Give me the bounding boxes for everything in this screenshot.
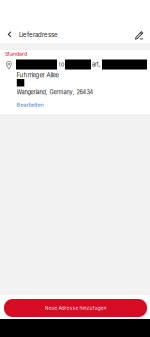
button[interactable]: Neue Adresse hinzufügen xyxy=(4,299,147,317)
staticText: To xyxy=(58,61,64,68)
staticText: Standard xyxy=(5,51,27,57)
button[interactable]: Bearbeiten xyxy=(16,100,45,109)
staticText: Lieferadresse xyxy=(19,31,58,38)
staticText: Fuhrrieger Allee xyxy=(17,71,59,79)
staticText: Neue Adresse hinzufügen xyxy=(44,305,106,311)
staticText: Wangerland, Germany, 26434 xyxy=(17,89,94,96)
staticText: art, xyxy=(92,61,101,68)
button[interactable]: Edit address xyxy=(130,26,148,44)
button[interactable]: Back xyxy=(1,25,19,43)
staticText: Bearbeiten xyxy=(17,101,44,108)
